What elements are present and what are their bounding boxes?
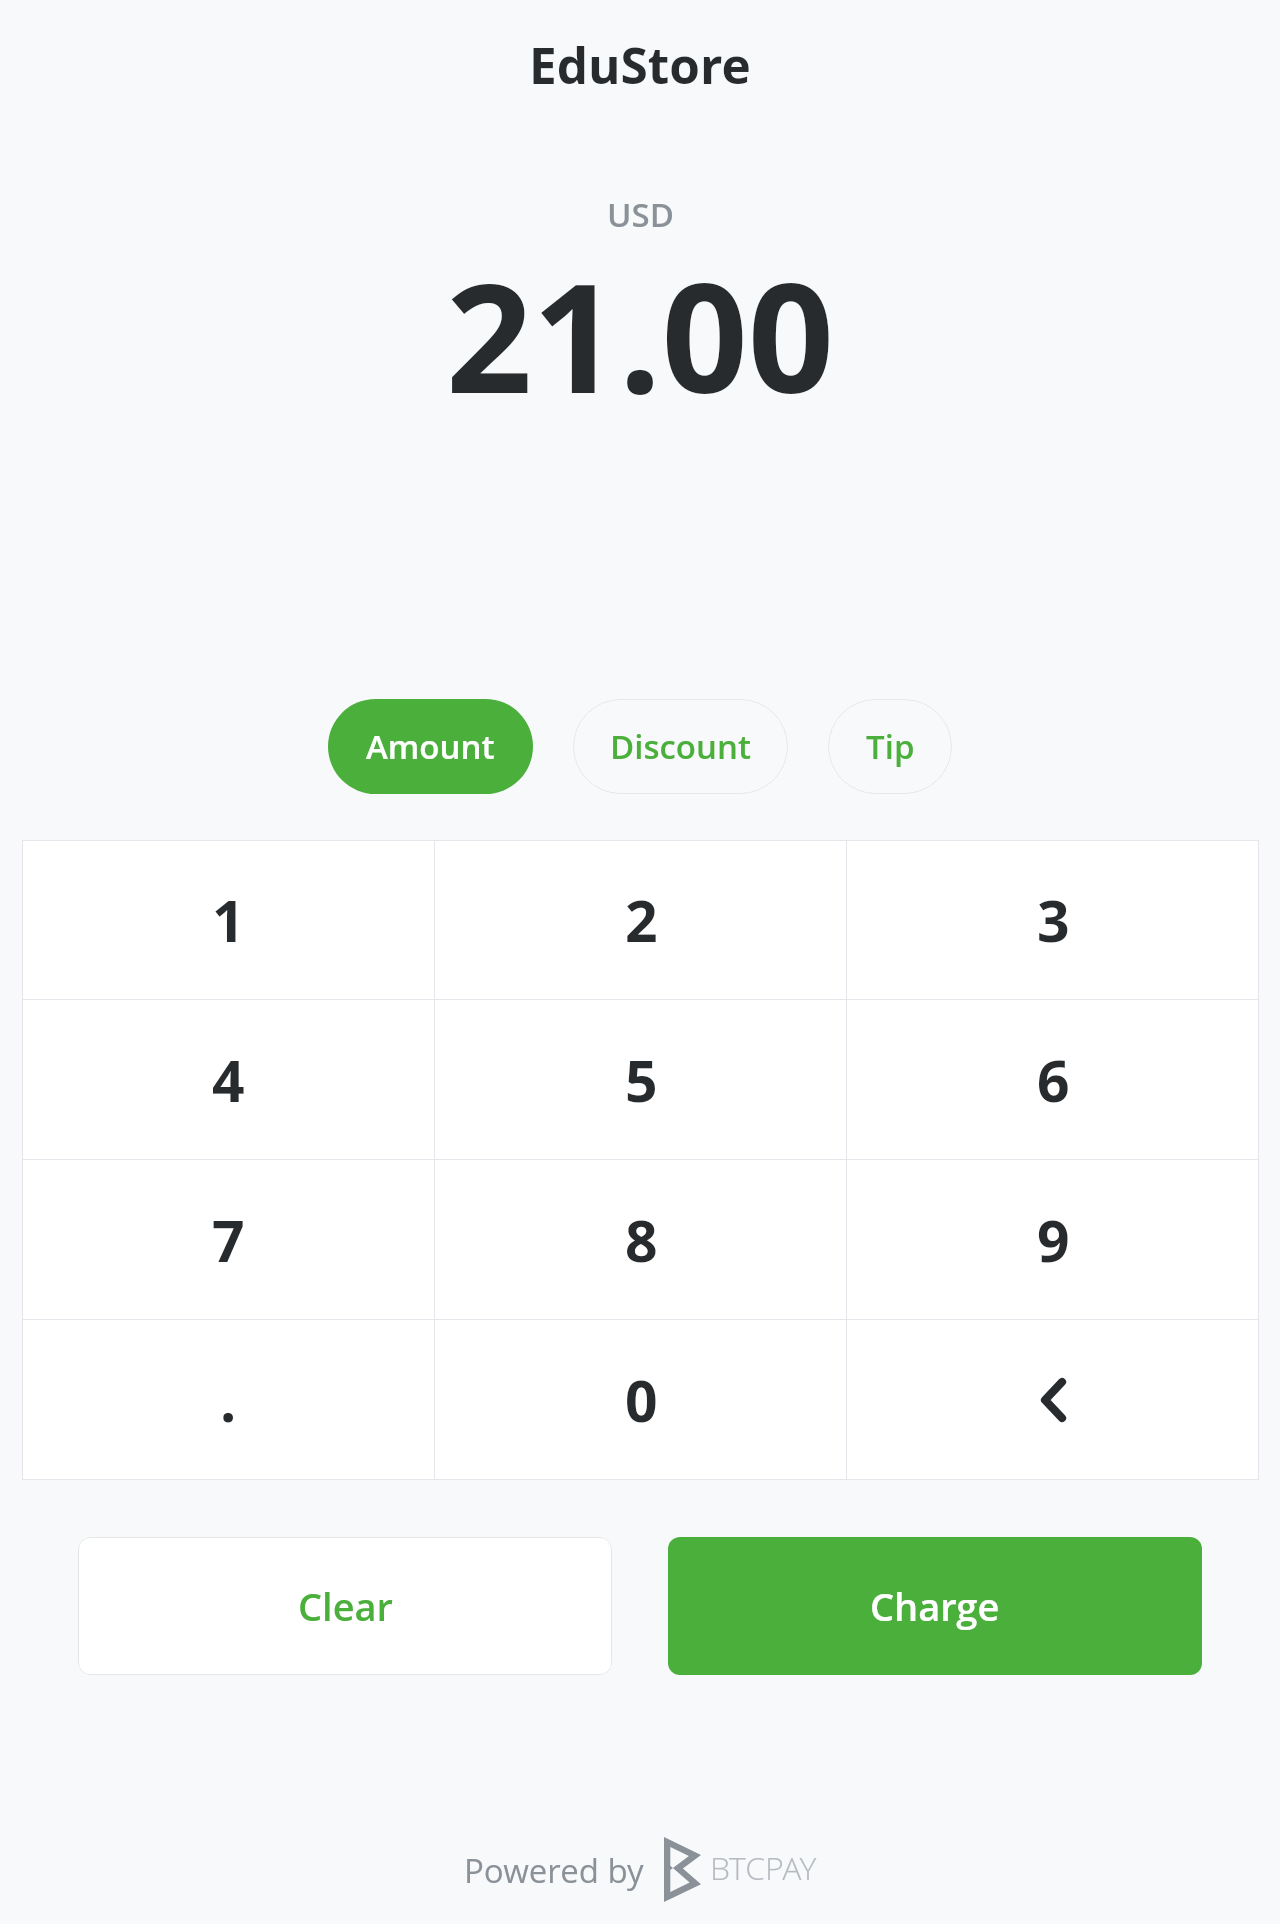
button[interactable]: 1 [22, 840, 435, 1000]
staticText: EduStore [529, 31, 751, 98]
staticText: Clear [298, 1580, 393, 1632]
staticText: 7 [212, 1201, 245, 1279]
staticText: 4 [212, 1041, 245, 1119]
staticText: 6 [1037, 1041, 1070, 1119]
staticText: 8 [625, 1201, 658, 1279]
staticText: Discount [610, 724, 751, 769]
staticText: Charge [870, 1580, 1000, 1632]
button[interactable]: 2 [435, 840, 847, 1000]
button[interactable]: Discount [573, 699, 788, 794]
staticText: BTCPAY [710, 1846, 817, 1890]
staticText: 3 [1037, 881, 1070, 959]
button[interactable]: Backspace [847, 1320, 1259, 1480]
staticText: Powered by [464, 1848, 644, 1893]
staticText: 1 [212, 881, 245, 959]
button[interactable]: Charge [668, 1537, 1202, 1675]
button[interactable]: Amount [328, 699, 533, 794]
staticText: Tip [866, 724, 915, 769]
button[interactable]: 5 [435, 1000, 847, 1160]
staticText: Amount [366, 724, 495, 769]
staticText: 0 [625, 1361, 658, 1439]
button[interactable]: . [22, 1320, 435, 1480]
staticText: 21.00 [446, 232, 834, 438]
staticText: 5 [625, 1041, 658, 1119]
button[interactable]: 7 [22, 1160, 435, 1320]
button[interactable]: 9 [847, 1160, 1259, 1320]
button[interactable]: 4 [22, 1000, 435, 1160]
staticText: . [220, 1361, 237, 1439]
staticText: 9 [1037, 1201, 1070, 1279]
button[interactable]: 0 [435, 1320, 847, 1480]
button[interactable]: Clear [78, 1537, 612, 1675]
staticText: USD [607, 192, 674, 237]
button[interactable]: 8 [435, 1160, 847, 1320]
button[interactable]: 6 [847, 1000, 1259, 1160]
button[interactable]: Tip [828, 699, 952, 794]
staticText: 2 [625, 881, 658, 959]
button[interactable]: 3 [847, 840, 1259, 1000]
